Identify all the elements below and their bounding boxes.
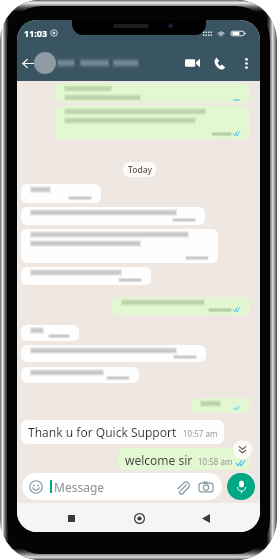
button[interactable] (21, 325, 79, 341)
button[interactable]: Thank u for Quick Support (21, 420, 224, 444)
button[interactable] (55, 106, 250, 139)
button[interactable]: Voice call (208, 51, 232, 75)
staticText: Message (54, 479, 105, 495)
button[interactable]: Record voice message (227, 473, 255, 500)
button[interactable]: Scroll to bottom (233, 440, 252, 459)
button[interactable] (21, 345, 206, 362)
staticText: 10:58 am (198, 456, 233, 467)
button[interactable]: More options (236, 53, 256, 73)
button[interactable]: Home (126, 505, 152, 531)
button[interactable] (112, 297, 250, 315)
button[interactable] (55, 83, 250, 103)
staticText: Today (128, 164, 152, 176)
button[interactable]: Camera (198, 479, 214, 495)
button[interactable]: Attach (174, 479, 190, 495)
button[interactable] (21, 367, 139, 383)
button[interactable] (21, 207, 205, 225)
staticText: welcome sir (125, 452, 193, 468)
button[interactable]: Contact photo (34, 52, 56, 74)
button[interactable]: Recent apps (58, 505, 84, 531)
button[interactable]: Video call (180, 51, 204, 75)
button[interactable] (21, 229, 218, 263)
button[interactable] (21, 184, 101, 203)
staticText: Thank u for Quick Support (28, 424, 177, 440)
button[interactable] (56, 53, 138, 73)
button[interactable]: welcome sir (118, 448, 250, 472)
button[interactable]: Message (22, 473, 222, 500)
button[interactable]: Back (17, 52, 39, 74)
staticText: 10:57 am (183, 428, 218, 439)
button[interactable]: Today (123, 162, 156, 177)
staticText: 11:03 (24, 27, 48, 39)
button[interactable] (21, 267, 151, 285)
button[interactable]: Back (193, 505, 219, 531)
button[interactable] (191, 398, 250, 413)
